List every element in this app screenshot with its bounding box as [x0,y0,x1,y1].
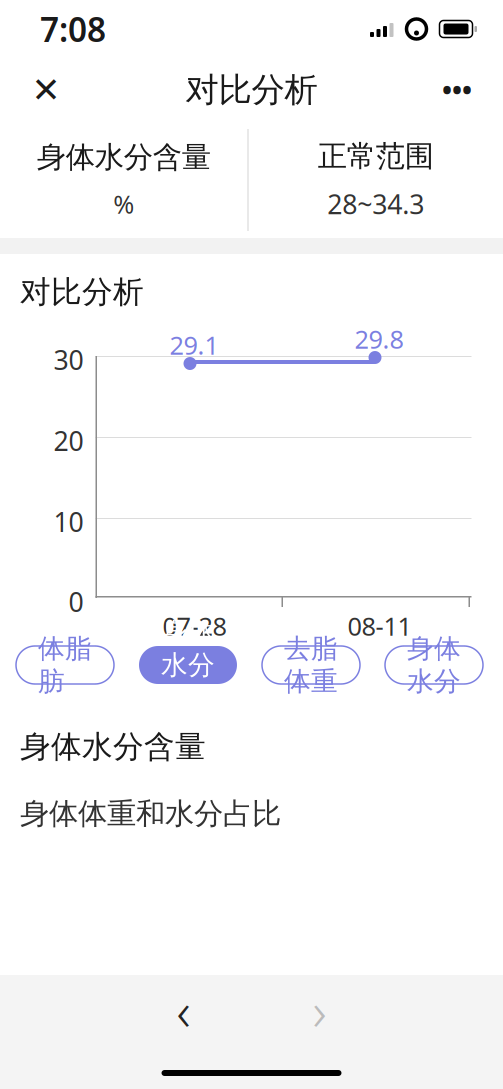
staticText: 7:08 [40,7,106,51]
staticText: 对比分析 [185,69,317,110]
staticText: 28~34.3 [327,186,424,222]
staticText: 体脂肪 [38,632,92,698]
staticText: ••• [442,72,472,108]
staticText: 对比分析 [20,273,144,311]
staticText: 0 [68,584,83,619]
staticText: 07-28 [162,609,226,643]
staticText: 身体水分 [407,632,461,698]
staticText: 29.8 [354,322,403,356]
staticText: › [312,975,326,1045]
staticText: 08-11 [347,609,411,643]
staticText: 10 [53,504,83,539]
staticText: 正常范围 [318,138,434,174]
button[interactable]: 体脂肪 [16,646,114,684]
staticText: % [113,187,134,221]
staticText: ✕ [31,70,60,110]
staticText: 身体体重和水分占比 [20,796,281,832]
staticText: 20 [53,423,83,458]
button[interactable]: Close [18,62,74,118]
button[interactable]: Previous [143,979,223,1041]
button[interactable]: More options [429,62,485,118]
button[interactable]: 去脂体重 [262,646,360,684]
staticText: ‹ [176,975,190,1045]
staticText: 身体水分含量 [37,139,211,175]
staticText: 29.1 [169,328,218,362]
staticText: 去脂体重 [284,632,338,698]
staticText: 身体水分含量 [161,616,215,714]
button[interactable]: 身体水分 [385,646,483,684]
staticText: 身体水分含量 [20,728,206,766]
button[interactable]: 身体水分含量 [139,646,237,684]
staticText: 30 [53,342,83,377]
button[interactable]: Next [279,979,359,1041]
